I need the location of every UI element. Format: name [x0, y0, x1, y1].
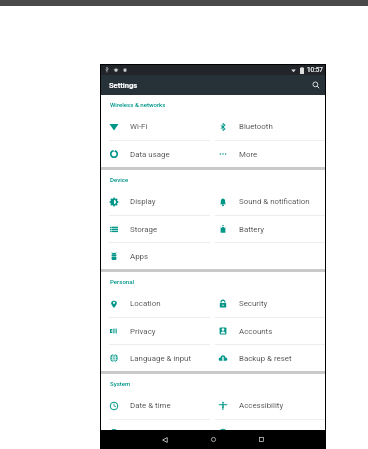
staticText: About tablet [239, 429, 282, 438]
button[interactable]: Apps [101, 243, 210, 269]
staticText: Date & time [130, 401, 171, 410]
staticText: Wireless & networks [110, 101, 166, 108]
button[interactable]: Back [156, 430, 174, 449]
button[interactable]: Security [210, 290, 325, 317]
button[interactable]: Data usage [101, 141, 210, 167]
staticText: Accessibility [239, 401, 284, 410]
button[interactable]: Language & input [101, 345, 210, 371]
staticText: Sound & notification [239, 197, 310, 206]
staticText: Battery [239, 225, 265, 234]
staticText: More [239, 150, 258, 159]
button[interactable]: Wi-Fi [101, 113, 210, 140]
staticText: System [110, 380, 131, 387]
staticText: Personal [110, 278, 135, 285]
staticText: Language & input [130, 354, 192, 363]
button[interactable]: Printing [101, 420, 210, 446]
staticText: Backup & reset [239, 354, 292, 363]
staticText: Security [239, 299, 268, 308]
button[interactable]: More [210, 141, 325, 167]
staticText: Apps [130, 252, 149, 261]
button[interactable]: Sound & notification [210, 188, 325, 215]
button[interactable]: Battery [210, 216, 325, 242]
button[interactable]: Backup & reset [210, 345, 325, 371]
button[interactable]: Search [309, 78, 323, 92]
button[interactable]: Settings [101, 75, 325, 95]
staticText: Data usage [130, 150, 170, 159]
staticText: Wi-Fi [130, 122, 148, 131]
staticText: Location [130, 299, 161, 308]
staticText: Storage [130, 225, 158, 234]
staticText: 10:57 [307, 66, 323, 74]
staticText: Settings [109, 81, 138, 90]
button[interactable]: Privacy [101, 318, 210, 344]
staticText: Device [110, 176, 129, 183]
button[interactable]: Bluetooth [210, 113, 325, 140]
button[interactable]: Location [101, 290, 210, 317]
button[interactable]: Accessibility [210, 392, 325, 419]
button[interactable]: Home [204, 430, 222, 449]
button[interactable]: Storage [101, 216, 210, 242]
button[interactable]: Accounts [210, 318, 325, 344]
button[interactable]: Date & time [101, 392, 210, 419]
button[interactable]: Recent apps [252, 430, 270, 449]
staticText: Display [130, 197, 156, 206]
staticText: Bluetooth [239, 122, 273, 131]
staticText: Privacy [130, 327, 156, 336]
button[interactable]: Display [101, 188, 210, 215]
button[interactable]: About tablet [210, 420, 325, 446]
staticText: Printing [130, 429, 158, 438]
staticText: Accounts [239, 327, 273, 336]
